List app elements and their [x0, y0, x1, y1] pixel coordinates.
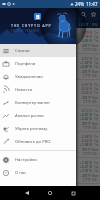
button[interactable]: -0.12 % [0, 106, 100, 132]
staticText: 1д [94, 164, 98, 168]
staticText: 24% [75, 1, 84, 7]
staticText: +3.06 % [80, 38, 93, 42]
button[interactable]: -0.45 % [0, 184, 100, 200]
staticText: 1д [94, 60, 98, 64]
button[interactable]: Анализ рынка [0, 109, 76, 122]
staticText: О нас [15, 170, 27, 176]
staticText: +0.69 % [80, 64, 93, 68]
staticText: 1д [94, 138, 98, 142]
staticText: BTC [16, 61, 26, 68]
staticText: BTC [16, 186, 26, 193]
staticText: Новости [15, 87, 33, 93]
staticText: 1н [94, 168, 98, 172]
staticText: -0.02 % [81, 86, 93, 90]
staticText: Обновить до PRO [15, 139, 51, 145]
staticText: +0.21 % [80, 164, 93, 168]
staticText: 201 P [82, 147, 91, 151]
button[interactable]: Favorites [90, 11, 97, 18]
button[interactable]: -0.57 % [0, 54, 100, 80]
staticText: 0% [92, 22, 98, 27]
staticText: Об. [92, 151, 98, 155]
staticText: Списки [15, 48, 30, 54]
button[interactable]: Конвертер валют [0, 96, 76, 109]
staticText: Конвертер валют [15, 100, 51, 106]
staticText: +1.35 % [80, 168, 93, 172]
staticText: THE CRYPTO APP [11, 23, 52, 28]
button[interactable]: Обновить до PRO [0, 135, 76, 148]
button[interactable]: Списки [0, 44, 76, 57]
staticText: 1ч [94, 56, 98, 60]
staticText: Объём 99 M [25, 22, 47, 27]
staticText: -0.98 % [81, 134, 93, 138]
staticText: BTC [16, 165, 26, 172]
staticText: -0.42 % [81, 138, 93, 142]
staticText: -0.57 % [81, 56, 93, 60]
button[interactable]: Back [24, 190, 30, 196]
staticText: 1д [94, 112, 98, 116]
staticText: 201 P [82, 173, 91, 177]
staticText: Кап [92, 147, 98, 151]
staticText: 1 T P [83, 47, 91, 51]
staticText: B [36, 13, 40, 20]
staticText: 11:47 [86, 1, 98, 7]
staticText: Кап [92, 173, 98, 177]
staticText: -0.07 % [81, 82, 93, 86]
staticText: 1н [94, 90, 98, 94]
staticText: 1ч [94, 30, 98, 34]
staticText: +0.45 % [80, 116, 93, 120]
button[interactable]: -0.07 % [0, 80, 100, 106]
button[interactable]: Home [47, 190, 53, 196]
button[interactable]: Новости [0, 83, 76, 96]
staticText: 1н [94, 142, 98, 146]
staticText: Об. [92, 125, 98, 129]
staticText: 1н [94, 64, 98, 68]
staticText: Bitcoin [16, 193, 29, 198]
staticText: Об. [92, 99, 98, 103]
staticText: 1 T P [83, 151, 91, 155]
button[interactable]: О нас [0, 166, 76, 179]
staticText: 1 T P [83, 125, 91, 129]
staticText: Анализ рынка [15, 113, 44, 119]
button[interactable]: Search [80, 11, 87, 18]
staticText: +0.07 % [80, 112, 93, 116]
button[interactable]: -0.98 % [0, 132, 100, 158]
staticText: 1ч [94, 134, 98, 138]
staticText: BTC [16, 139, 26, 146]
staticText: 201 P [82, 69, 91, 73]
staticText: Об. [92, 73, 98, 77]
staticText: 201 P [82, 43, 91, 47]
button[interactable]: -0.09 % [0, 28, 100, 54]
staticText: Настройки [15, 157, 37, 163]
staticText: Об. [92, 177, 98, 181]
staticText: 1ч [94, 160, 98, 164]
staticText: 1 T P [83, 177, 91, 181]
staticText: Уведомления [15, 74, 43, 80]
staticText: +1.08 % [80, 142, 93, 146]
staticText: +1.06 % [80, 160, 93, 164]
button[interactable]: +1.06 % [0, 158, 100, 184]
button[interactable]: Recents [70, 190, 76, 196]
staticText: BTC [16, 113, 26, 120]
staticText: USDT [79, 22, 89, 27]
button[interactable]: Настройки [0, 153, 76, 166]
staticText: 1д [94, 86, 98, 90]
staticText: 201 P [82, 121, 91, 125]
button[interactable]: Убрать рекламу [0, 122, 76, 135]
button[interactable]: Портфели [0, 57, 76, 70]
staticText: Кап [92, 121, 98, 125]
staticText: 1ч [94, 82, 98, 86]
staticText: Об. [92, 47, 98, 51]
staticText: -0.12 % [81, 108, 93, 112]
staticText: -0.09 % [81, 30, 93, 34]
button[interactable]: Уведомления [0, 70, 76, 83]
staticText: BTC [16, 87, 26, 94]
staticText: Кап. 2,1 T [4, 22, 21, 27]
staticText: -0.05 % [81, 90, 93, 94]
